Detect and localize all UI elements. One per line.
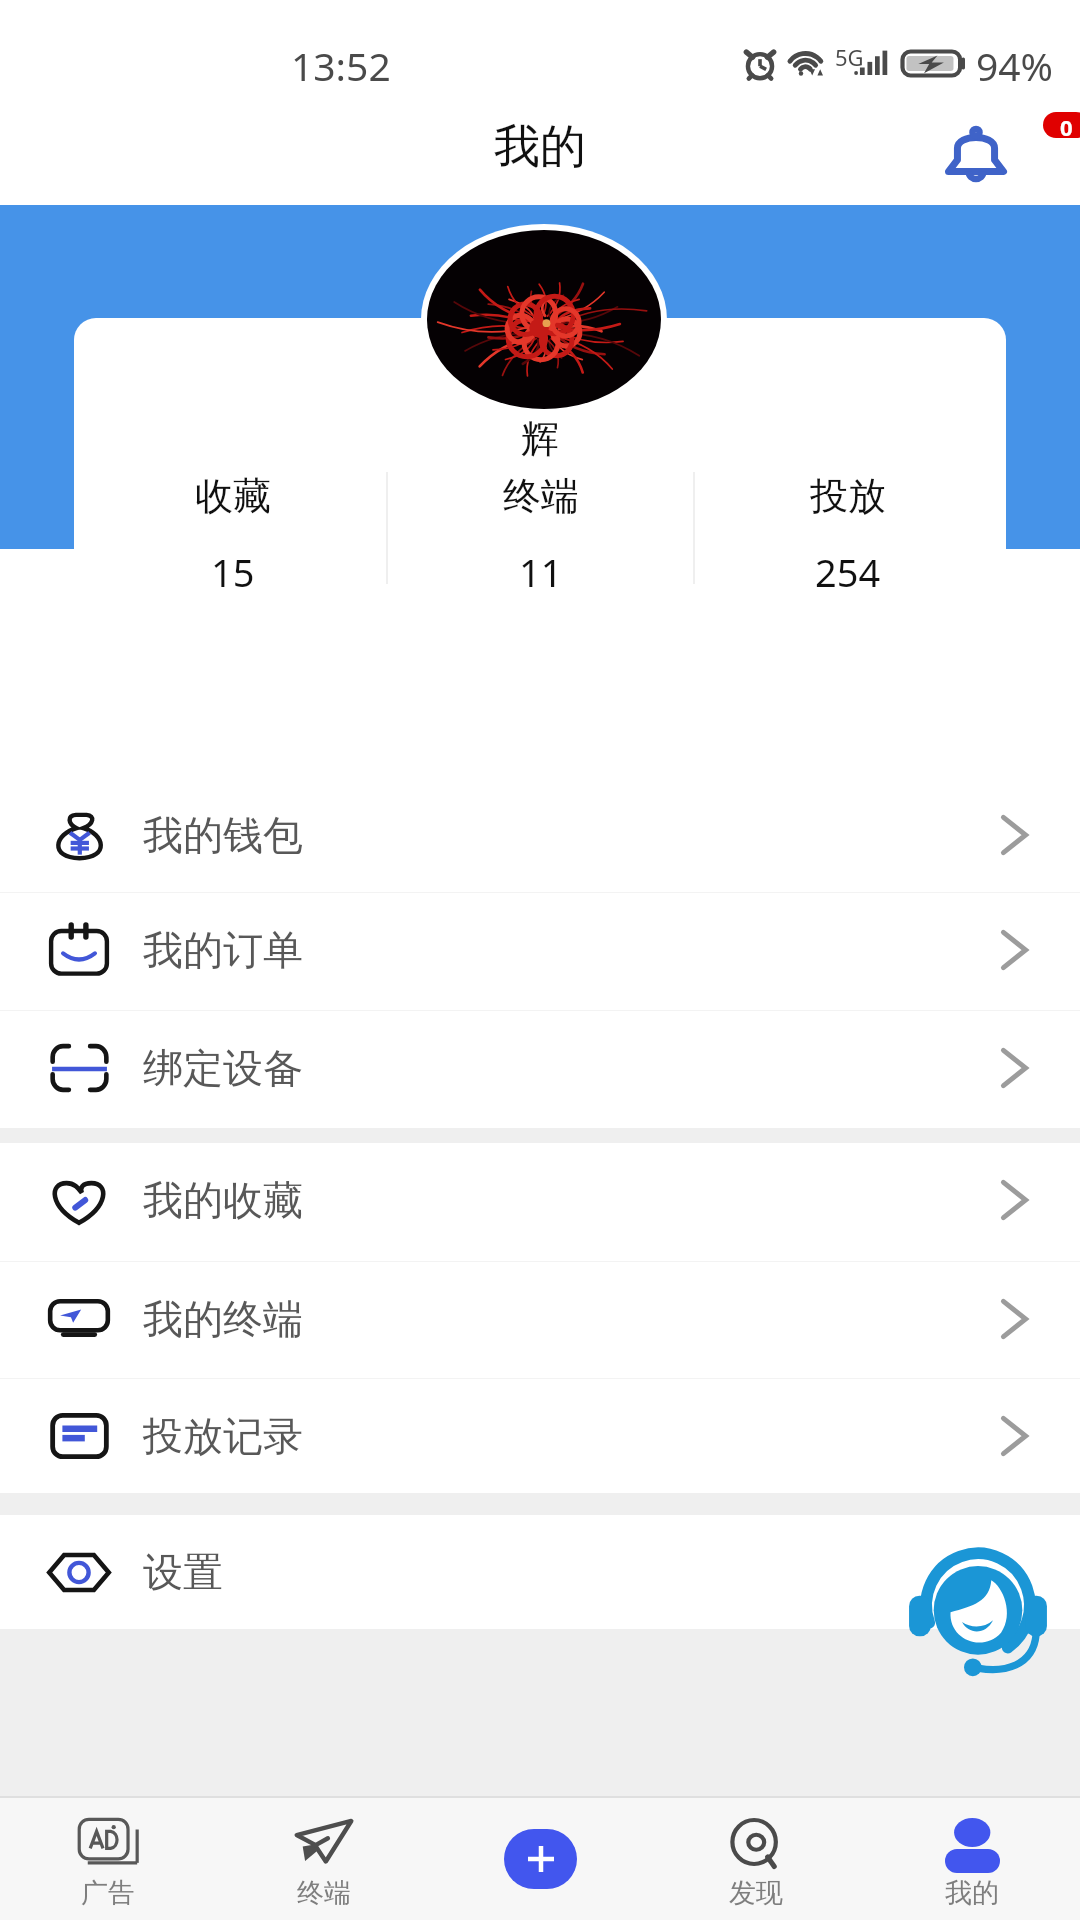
staticText: 绑定设备 <box>143 1043 303 1093</box>
button[interactable]: 我的钱包 <box>0 778 1080 892</box>
staticText: 辉 <box>74 415 1006 463</box>
staticText: 设置 <box>143 1547 223 1597</box>
staticText: 投放记录 <box>143 1411 303 1461</box>
button[interactable]: 广告 <box>0 1798 216 1920</box>
staticText: 0 <box>1060 112 1073 138</box>
button[interactable]: 绑定设备 <box>0 1011 1080 1125</box>
staticText: 广告 <box>81 1876 135 1910</box>
staticText: 15 <box>211 546 255 598</box>
staticText: 我的收藏 <box>143 1175 303 1225</box>
button[interactable]: 发现 <box>648 1798 864 1920</box>
staticText: 13:52 <box>291 39 391 92</box>
button[interactable]: 我的终端 <box>0 1262 1080 1376</box>
staticText: 收藏 <box>195 472 271 520</box>
staticText: 我的终端 <box>143 1294 303 1344</box>
staticText: 5G <box>835 42 864 72</box>
staticText: 94% <box>976 39 1054 92</box>
button[interactable]: Notifications <box>936 113 1016 193</box>
button[interactable]: 我的订单 <box>0 893 1080 1007</box>
button[interactable]: 我的 <box>864 1798 1080 1920</box>
button[interactable]: 终端 <box>388 472 693 598</box>
button[interactable]: 设置 <box>0 1515 1080 1629</box>
staticText: 11 <box>519 546 563 598</box>
button[interactable]: 辉 <box>74 318 1006 644</box>
button[interactable]: 终端 <box>216 1798 432 1920</box>
staticText: 254 <box>815 546 881 598</box>
staticText: 终端 <box>297 1876 351 1910</box>
button[interactable]: 我的收藏 <box>0 1143 1080 1257</box>
staticText: 终端 <box>503 472 579 520</box>
button[interactable]: Customer service <box>905 1537 1051 1682</box>
staticText: 我的 <box>945 1876 999 1910</box>
button[interactable]: Add <box>504 1829 577 1889</box>
staticText: 我的钱包 <box>143 810 303 860</box>
staticText: 发现 <box>729 1876 783 1910</box>
button[interactable]: Avatar <box>421 224 667 415</box>
button[interactable]: 收藏 <box>80 472 386 598</box>
staticText: 我的 <box>494 118 586 176</box>
button[interactable]: 投放 <box>695 472 1000 598</box>
staticText: 我的订单 <box>143 925 303 975</box>
button[interactable]: 投放记录 <box>0 1379 1080 1493</box>
staticText: 投放 <box>810 472 886 520</box>
